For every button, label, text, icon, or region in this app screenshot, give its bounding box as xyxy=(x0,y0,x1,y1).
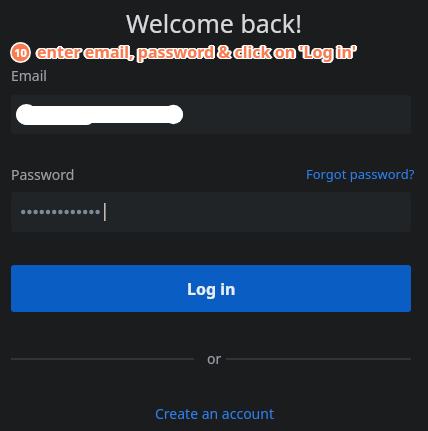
staticText: enter email, password & click on 'Log in… xyxy=(38,41,357,63)
button[interactable]: Create an account xyxy=(155,404,274,423)
staticText: Password xyxy=(11,165,75,184)
staticText: enter email, password & click on 'Log in… xyxy=(37,40,356,62)
staticText: 10 xyxy=(12,45,25,60)
staticText: or xyxy=(207,349,222,368)
staticText: 10 xyxy=(14,45,27,60)
staticText: enter email, password & click on 'Log in… xyxy=(38,42,357,64)
staticText: enter email, password & click on 'Log in… xyxy=(36,41,355,63)
staticText: enter email, password & click on 'Log in… xyxy=(36,40,355,62)
staticText: 10 xyxy=(15,44,28,59)
button[interactable] xyxy=(11,95,411,134)
button[interactable]: Log in xyxy=(11,265,411,312)
staticText: Forgot password? xyxy=(306,165,415,183)
staticText: enter email, password & click on 'Log in… xyxy=(37,41,356,63)
staticText: 10 xyxy=(13,44,26,59)
staticText: 10 xyxy=(15,46,28,61)
staticText: Email xyxy=(11,66,47,85)
button[interactable] xyxy=(11,192,411,232)
staticText: 10 xyxy=(14,46,27,61)
staticText: 10 xyxy=(16,45,29,60)
staticText: enter email, password & click on 'Log in… xyxy=(36,42,355,64)
staticText: 10 xyxy=(15,45,28,60)
staticText: 10 xyxy=(13,46,26,61)
staticText: enter email, password & click on 'Log in… xyxy=(35,41,354,63)
staticText: 10 xyxy=(13,45,26,60)
staticText: enter email, password & click on 'Log in… xyxy=(39,41,358,63)
staticText: Welcome back! xyxy=(126,6,302,40)
staticText: enter email, password & click on 'Log in… xyxy=(37,42,356,64)
staticText: Create an account xyxy=(155,404,274,423)
button[interactable]: Forgot password? xyxy=(306,165,415,183)
staticText: 10 xyxy=(14,44,27,59)
staticText: enter email, password & click on 'Log in… xyxy=(38,40,357,62)
staticText: Log in xyxy=(187,278,236,300)
